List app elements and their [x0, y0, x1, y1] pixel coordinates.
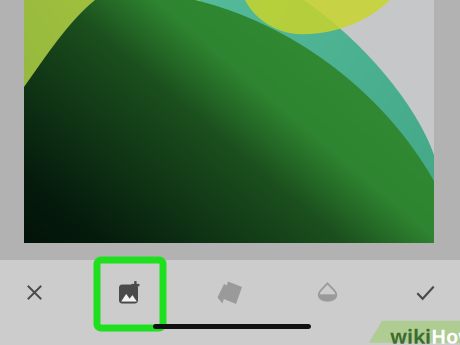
button[interactable]: Add photo	[100, 264, 160, 320]
button[interactable]: Adjust	[297, 264, 357, 320]
button[interactable]: Cancel	[4, 264, 64, 320]
staticText: How	[431, 323, 460, 345]
button[interactable]: Done	[395, 264, 455, 320]
staticText: wiki	[390, 323, 431, 345]
button[interactable]: Filters	[200, 264, 260, 320]
